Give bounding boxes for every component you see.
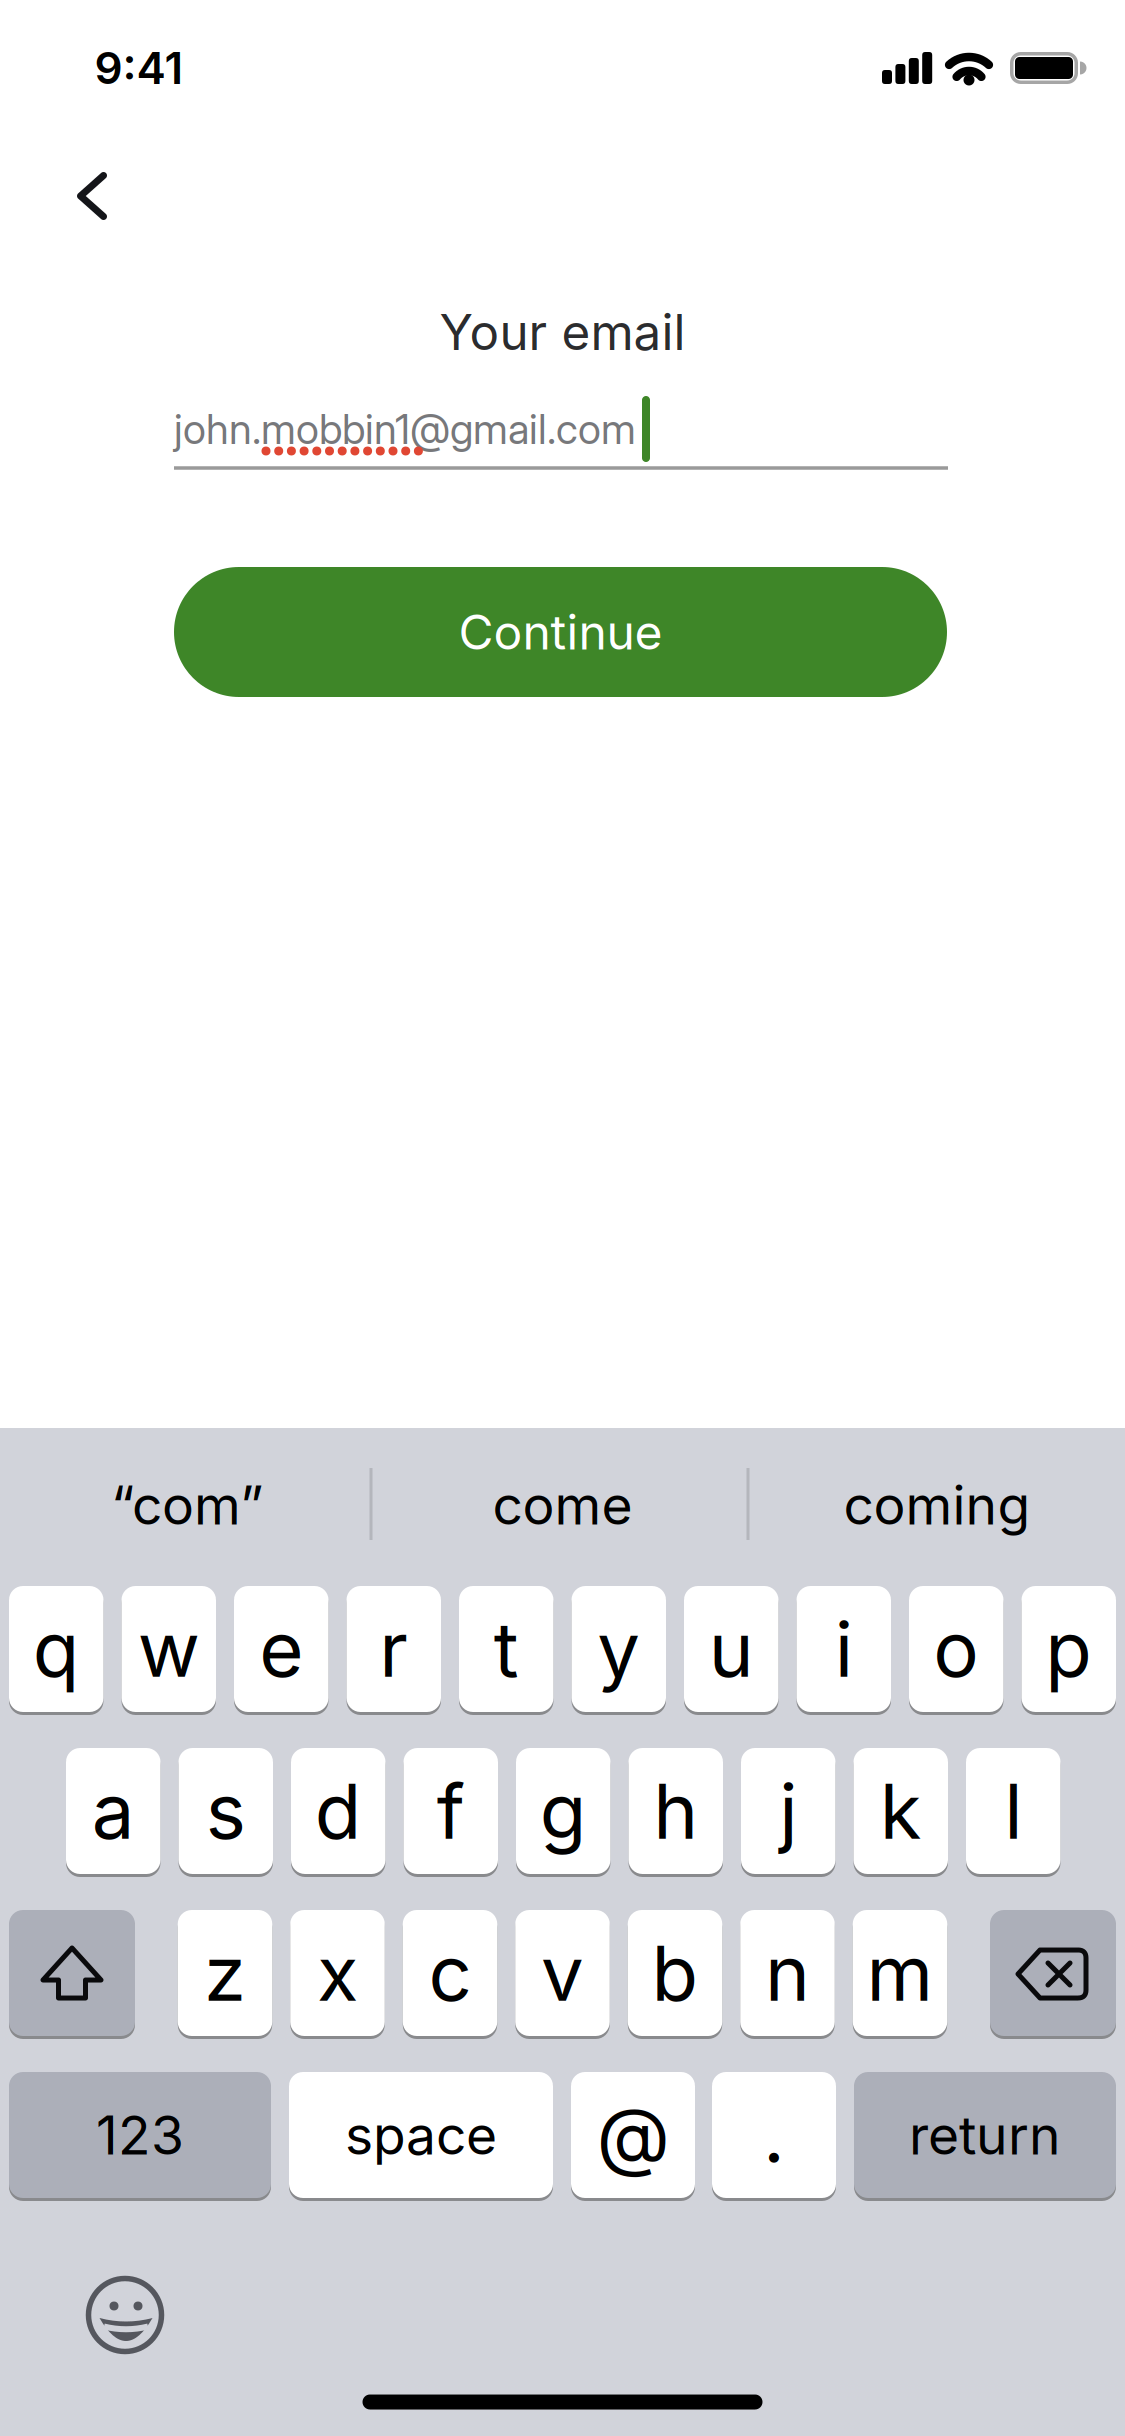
staticText: i: [835, 1604, 853, 1694]
button[interactable]: 123: [9, 2072, 271, 2198]
staticText: .: [763, 2090, 785, 2180]
button[interactable]: d: [291, 1748, 385, 1874]
button[interactable]: k: [853, 1748, 948, 1874]
staticText: v: [541, 1928, 584, 2018]
button[interactable]: x: [290, 1910, 385, 2036]
button[interactable]: p: [1021, 1586, 1116, 1712]
staticText: b: [651, 1928, 698, 2018]
button[interactable]: @: [571, 2072, 695, 2198]
button[interactable]: l: [966, 1748, 1060, 1874]
staticText: u: [709, 1604, 754, 1694]
button[interactable]: s: [178, 1748, 273, 1874]
staticText: e: [259, 1604, 303, 1694]
staticText: 123: [96, 2103, 184, 2166]
button[interactable]: g: [516, 1748, 610, 1874]
button[interactable]: come: [382, 1440, 742, 1570]
button[interactable]: Back: [42, 146, 142, 246]
button[interactable]: u: [684, 1586, 778, 1712]
staticText: g: [540, 1766, 587, 1856]
staticText: n: [765, 1928, 810, 2018]
button[interactable]: f: [403, 1748, 498, 1874]
staticText: o: [933, 1604, 979, 1694]
staticText: l: [1004, 1766, 1022, 1856]
staticText: d: [315, 1766, 362, 1856]
staticText: return: [909, 2103, 1061, 2166]
staticText: @: [596, 2090, 669, 2180]
staticText: t: [494, 1604, 519, 1694]
button[interactable]: r: [346, 1586, 441, 1712]
staticText: f: [437, 1766, 465, 1856]
staticText: coming: [843, 1473, 1030, 1536]
staticText: Your email: [439, 303, 685, 361]
staticText: w: [138, 1604, 200, 1694]
button[interactable]: o: [909, 1586, 1003, 1712]
staticText: m: [866, 1928, 933, 2018]
button[interactable]: e: [234, 1586, 328, 1712]
staticText: 9:41: [94, 42, 183, 94]
button[interactable]: m: [853, 1910, 947, 2036]
button[interactable]: n: [740, 1910, 835, 2036]
button[interactable]: a: [66, 1748, 160, 1874]
staticText: come: [492, 1473, 632, 1536]
staticText: k: [880, 1766, 922, 1856]
staticText: s: [206, 1766, 246, 1856]
button[interactable]: q: [9, 1586, 103, 1712]
button[interactable]: “com”: [7, 1440, 367, 1570]
button[interactable]: space: [289, 2072, 553, 2198]
button[interactable]: t: [459, 1586, 553, 1712]
button[interactable]: b: [628, 1910, 722, 2036]
staticText: “com”: [111, 1473, 263, 1536]
button[interactable]: i: [796, 1586, 891, 1712]
staticText: x: [317, 1928, 358, 2018]
staticText: q: [33, 1604, 80, 1694]
staticText: j: [779, 1766, 797, 1856]
staticText: z: [204, 1928, 246, 2018]
button[interactable]: h: [628, 1748, 723, 1874]
staticText: space: [345, 2103, 497, 2166]
button[interactable]: y: [571, 1586, 666, 1712]
staticText: y: [597, 1604, 640, 1694]
button[interactable]: j: [741, 1748, 835, 1874]
staticText: c: [428, 1928, 471, 2018]
button[interactable]: return: [854, 2072, 1116, 2198]
button[interactable]: coming: [757, 1440, 1117, 1570]
button[interactable]: c: [403, 1910, 497, 2036]
staticText: r: [379, 1604, 408, 1694]
button[interactable]: Delete: [990, 1910, 1116, 2036]
staticText: p: [1045, 1604, 1092, 1694]
staticText: john.mobbin1@gmail.com: [174, 405, 636, 453]
button[interactable]: Emoji: [75, 2265, 175, 2365]
button[interactable]: v: [515, 1910, 610, 2036]
button[interactable]: w: [121, 1586, 216, 1712]
button[interactable]: .: [712, 2072, 836, 2198]
button[interactable]: Continue: [174, 567, 947, 697]
staticText: h: [653, 1766, 698, 1856]
staticText: Continue: [458, 604, 662, 660]
staticText: a: [92, 1766, 135, 1856]
button[interactable]: z: [178, 1910, 272, 2036]
button[interactable]: Shift: [9, 1910, 135, 2036]
